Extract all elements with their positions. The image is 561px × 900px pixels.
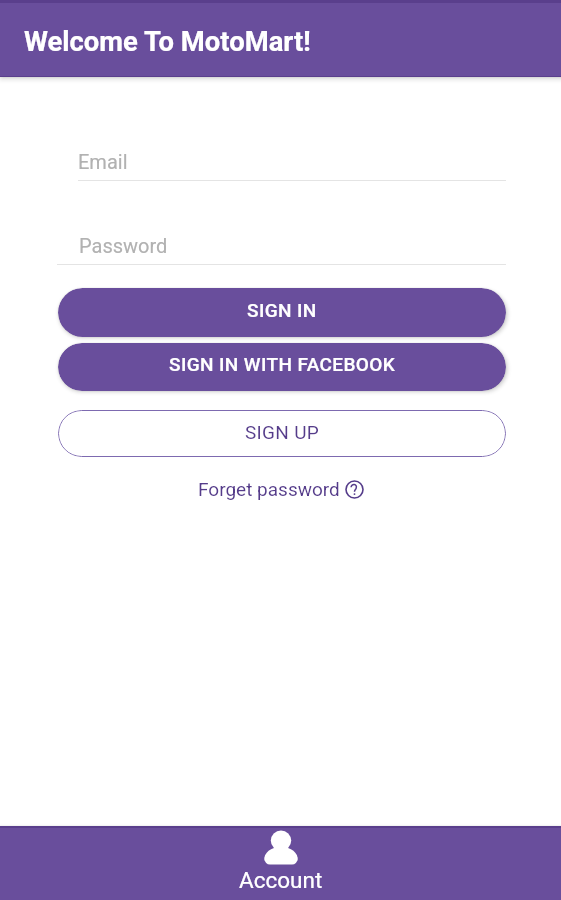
staticText: Account [239,867,323,893]
button[interactable]: Welcome To MotoMart! [0,0,561,77]
staticText: SIGN IN [247,299,317,321]
button[interactable]: Account [209,826,353,896]
staticText: Password [79,234,168,257]
staticText: Email [78,150,128,173]
button[interactable]: SIGN IN [58,288,506,337]
button[interactable]: Password [57,229,506,265]
staticText: SIGN IN WITH FACEBOOK [169,353,396,375]
other: Account [263,826,299,870]
button[interactable]: SIGN IN WITH FACEBOOK [58,343,506,391]
button[interactable]: Email [78,145,506,181]
button[interactable]: Forget password [198,478,364,500]
button[interactable]: SIGN UP [58,410,506,457]
staticText: Forget password [198,478,340,500]
staticText: Welcome To MotoMart! [24,26,311,58]
staticText: SIGN UP [245,421,320,443]
